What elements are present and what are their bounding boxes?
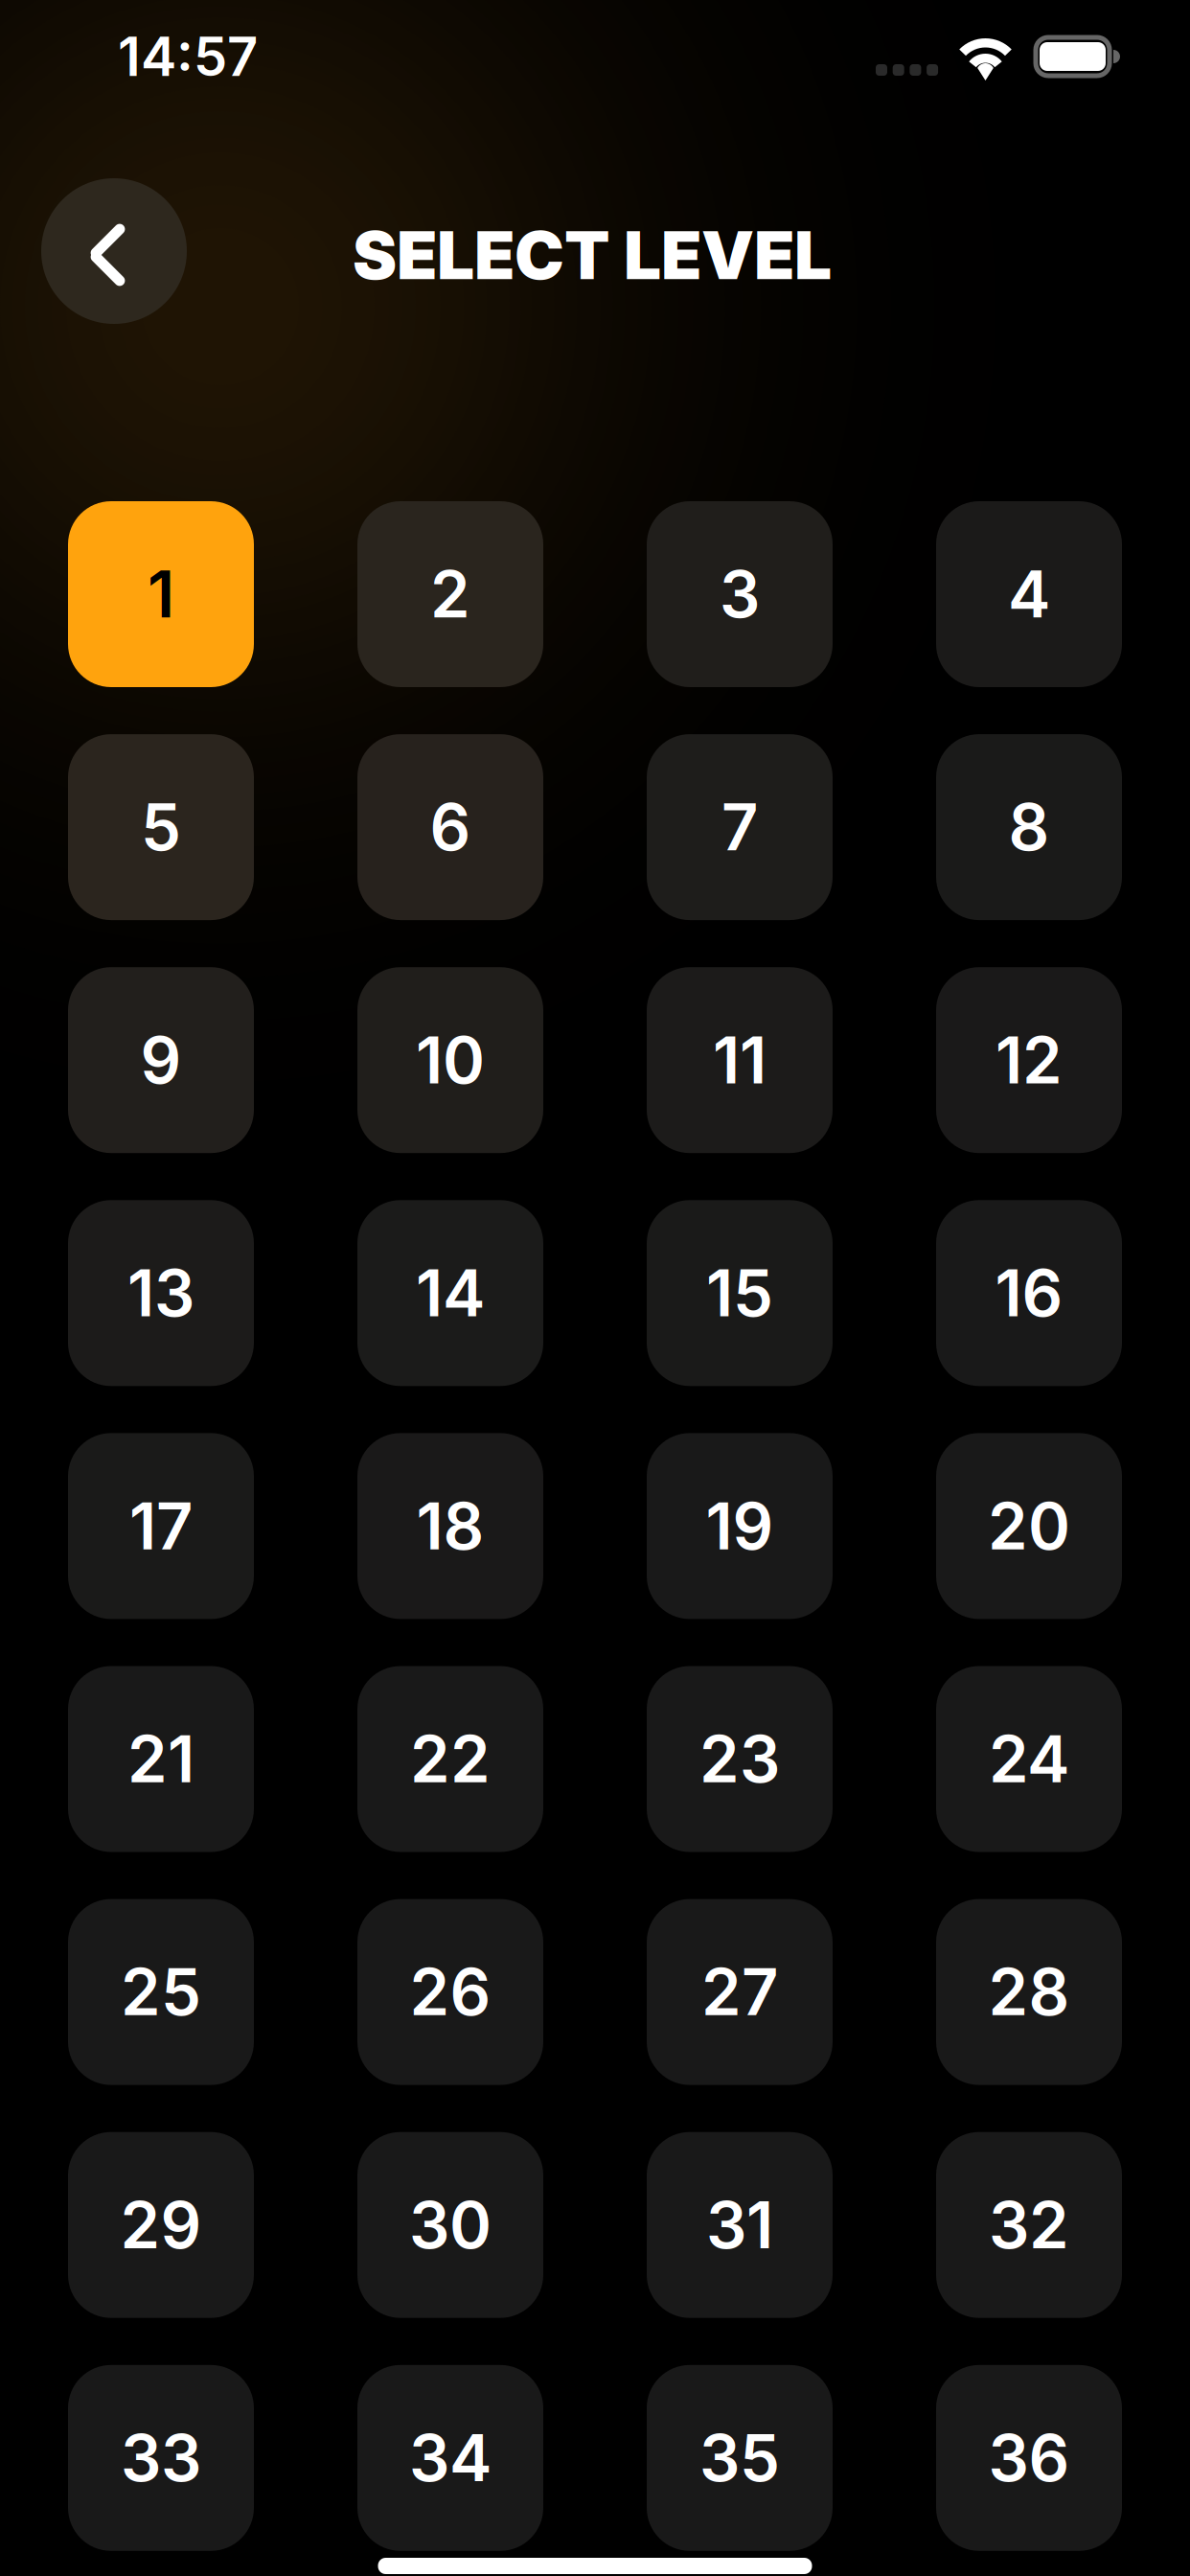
staticText: 8 [1008, 789, 1050, 866]
staticText: 30 [409, 2186, 492, 2264]
staticText: 14 [416, 1254, 485, 1332]
staticText: 34 [409, 2419, 492, 2497]
staticText: 17 [129, 1487, 193, 1565]
button[interactable]: 8 [936, 734, 1122, 920]
staticText: 14:57 [118, 24, 258, 89]
button[interactable]: 15 [647, 1200, 833, 1386]
staticText: 6 [430, 789, 471, 866]
button[interactable]: 14 [357, 1200, 543, 1386]
staticText: 25 [121, 1953, 201, 2031]
staticText: 31 [706, 2186, 773, 2264]
staticText: 24 [989, 1720, 1069, 1798]
staticText: 35 [699, 2419, 780, 2497]
staticText: 36 [988, 2419, 1070, 2497]
staticText: 18 [416, 1487, 484, 1565]
button[interactable]: 7 [647, 734, 833, 920]
button[interactable]: 22 [357, 1666, 543, 1852]
button[interactable]: 16 [936, 1200, 1122, 1386]
button[interactable]: 9 [68, 967, 254, 1153]
staticText: 3 [720, 556, 760, 633]
staticText: 13 [127, 1254, 195, 1332]
button[interactable]: 23 [647, 1666, 833, 1852]
button[interactable]: Back [41, 178, 187, 324]
button[interactable]: 2 [357, 501, 543, 687]
button[interactable]: 4 [936, 501, 1122, 687]
button[interactable]: 35 [647, 2365, 833, 2551]
button[interactable]: 30 [357, 2132, 543, 2318]
button[interactable]: 11 [647, 967, 833, 1153]
button[interactable]: 34 [357, 2365, 543, 2551]
button[interactable]: 13 [68, 1200, 254, 1386]
staticText: 19 [706, 1487, 774, 1565]
staticText: 21 [127, 1720, 195, 1798]
staticText: 11 [713, 1021, 767, 1099]
staticText: 29 [120, 2186, 202, 2264]
button[interactable]: 1 [68, 501, 254, 687]
button[interactable]: 25 [68, 1899, 254, 2085]
staticText: 12 [995, 1021, 1063, 1099]
button[interactable]: 28 [936, 1899, 1122, 2085]
staticText: 1 [148, 556, 174, 633]
button[interactable]: 10 [357, 967, 543, 1153]
button[interactable]: 21 [68, 1666, 254, 1852]
button[interactable]: 6 [357, 734, 543, 920]
button[interactable]: 32 [936, 2132, 1122, 2318]
staticText: 5 [141, 789, 181, 866]
staticText: 20 [988, 1487, 1070, 1565]
staticText: 22 [410, 1720, 491, 1798]
staticText: 9 [140, 1021, 182, 1099]
staticText: 4 [1008, 556, 1050, 633]
button[interactable]: 27 [647, 1899, 833, 2085]
button[interactable]: 12 [936, 967, 1122, 1153]
staticText: 32 [989, 2186, 1069, 2264]
staticText: 2 [430, 556, 470, 633]
button[interactable]: 33 [68, 2365, 254, 2551]
staticText: 27 [701, 1953, 778, 2031]
staticText: 15 [706, 1254, 773, 1332]
button[interactable]: 18 [357, 1433, 543, 1619]
button[interactable]: 20 [936, 1433, 1122, 1619]
staticText: 28 [988, 1953, 1070, 2031]
button[interactable]: 17 [68, 1433, 254, 1619]
staticText: 26 [410, 1953, 491, 2031]
staticText: 7 [721, 789, 758, 866]
staticText: 10 [416, 1021, 485, 1099]
button[interactable]: 31 [647, 2132, 833, 2318]
button[interactable]: 36 [936, 2365, 1122, 2551]
button[interactable]: 5 [68, 734, 254, 920]
button[interactable]: 29 [68, 2132, 254, 2318]
staticText: 16 [995, 1254, 1063, 1332]
staticText: 33 [121, 2419, 201, 2497]
staticText: 23 [699, 1720, 780, 1798]
button[interactable]: 24 [936, 1666, 1122, 1852]
button[interactable]: 26 [357, 1899, 543, 2085]
staticText: SELECT LEVEL [353, 215, 832, 295]
button[interactable]: 19 [647, 1433, 833, 1619]
button[interactable]: 3 [647, 501, 833, 687]
